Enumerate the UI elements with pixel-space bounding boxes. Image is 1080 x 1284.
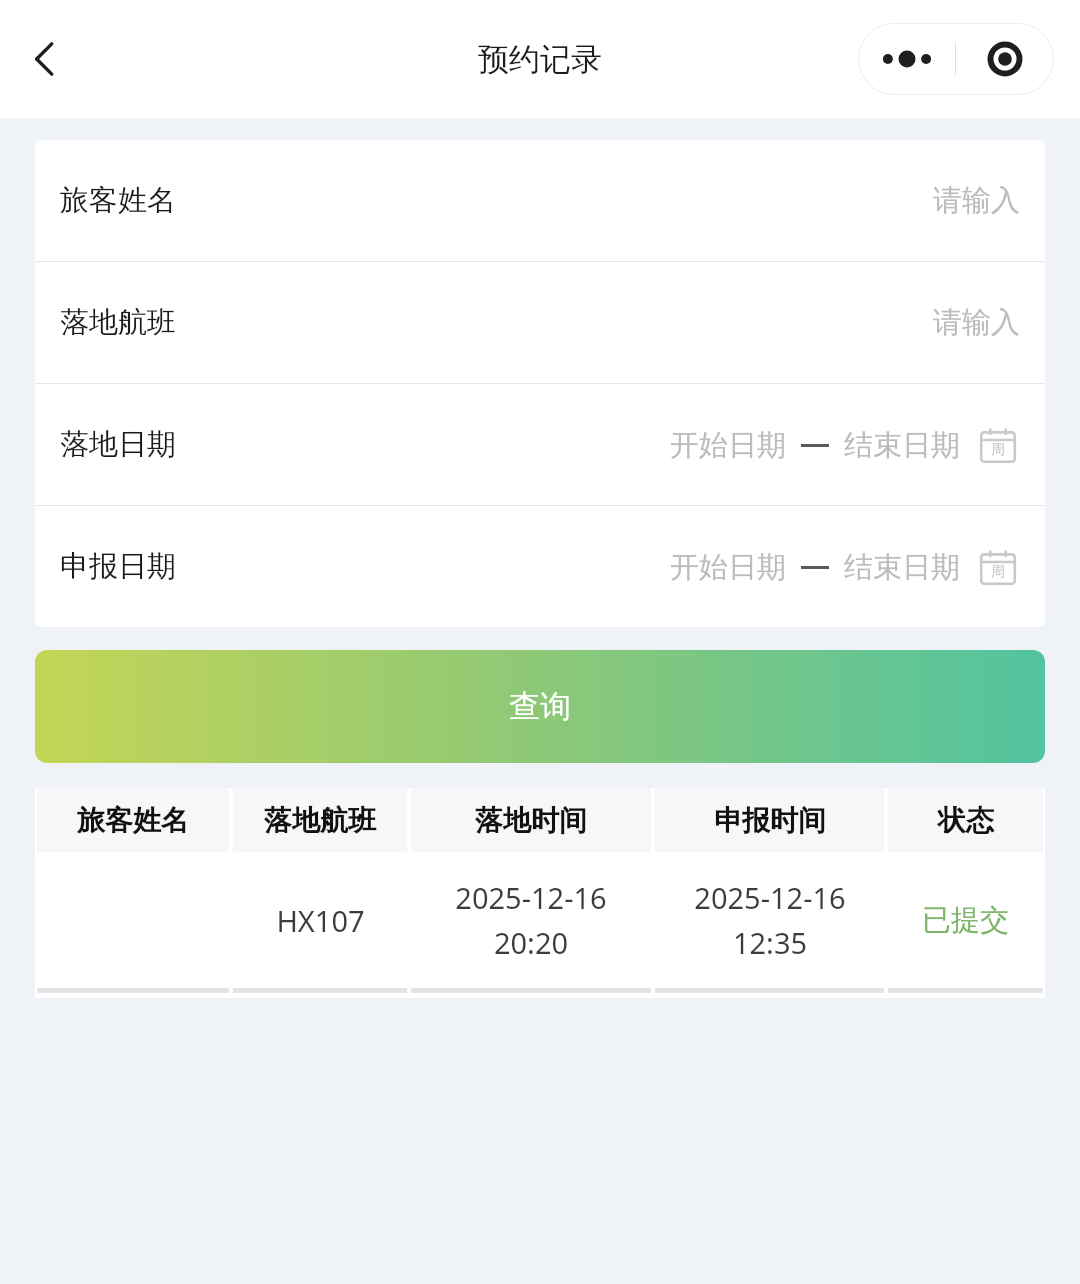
button[interactable]: HX107 bbox=[35, 852, 1045, 988]
staticText: 请输入 bbox=[933, 182, 1020, 219]
staticText: 落地时间 bbox=[475, 803, 587, 838]
button[interactable]: Close mini program bbox=[956, 23, 1054, 95]
staticText: 结束日期 bbox=[844, 427, 960, 464]
staticText: 周 bbox=[991, 563, 1005, 581]
button[interactable]: Pick date range bbox=[976, 423, 1020, 467]
staticText: 旅客姓名 bbox=[60, 182, 176, 219]
staticText: 申报日期 bbox=[60, 548, 176, 585]
staticText: 已提交 bbox=[922, 902, 1009, 939]
button[interactable]: 查询 bbox=[35, 650, 1045, 763]
staticText: 2025-12-16 12:35 bbox=[694, 878, 846, 963]
staticText: 请输入 bbox=[933, 304, 1020, 341]
staticText: 周 bbox=[991, 441, 1005, 459]
staticText: 查询 bbox=[509, 687, 571, 726]
button[interactable]: 申报日期 bbox=[35, 506, 1045, 627]
staticText: 开始日期 bbox=[670, 549, 786, 586]
button[interactable]: Back bbox=[14, 27, 78, 91]
staticText: 结束日期 bbox=[844, 549, 960, 586]
staticText: 开始日期 bbox=[670, 427, 786, 464]
staticText: 落地航班 bbox=[264, 803, 376, 838]
button[interactable]: Pick date range bbox=[976, 545, 1020, 589]
staticText: 2025-12-16 20:20 bbox=[455, 878, 607, 963]
button[interactable]: 落地航班 bbox=[35, 262, 1045, 383]
button[interactable]: 落地日期 bbox=[35, 384, 1045, 505]
button[interactable]: More options bbox=[858, 23, 955, 95]
staticText: HX107 bbox=[276, 901, 365, 940]
staticText: 申报时间 bbox=[714, 803, 826, 838]
staticText: 旅客姓名 bbox=[77, 803, 189, 838]
button[interactable]: 旅客姓名 bbox=[35, 140, 1045, 261]
staticText: 落地航班 bbox=[60, 304, 176, 341]
staticText: 状态 bbox=[938, 803, 994, 838]
staticText: 预约记录 bbox=[478, 40, 602, 79]
staticText: 落地日期 bbox=[60, 426, 176, 463]
